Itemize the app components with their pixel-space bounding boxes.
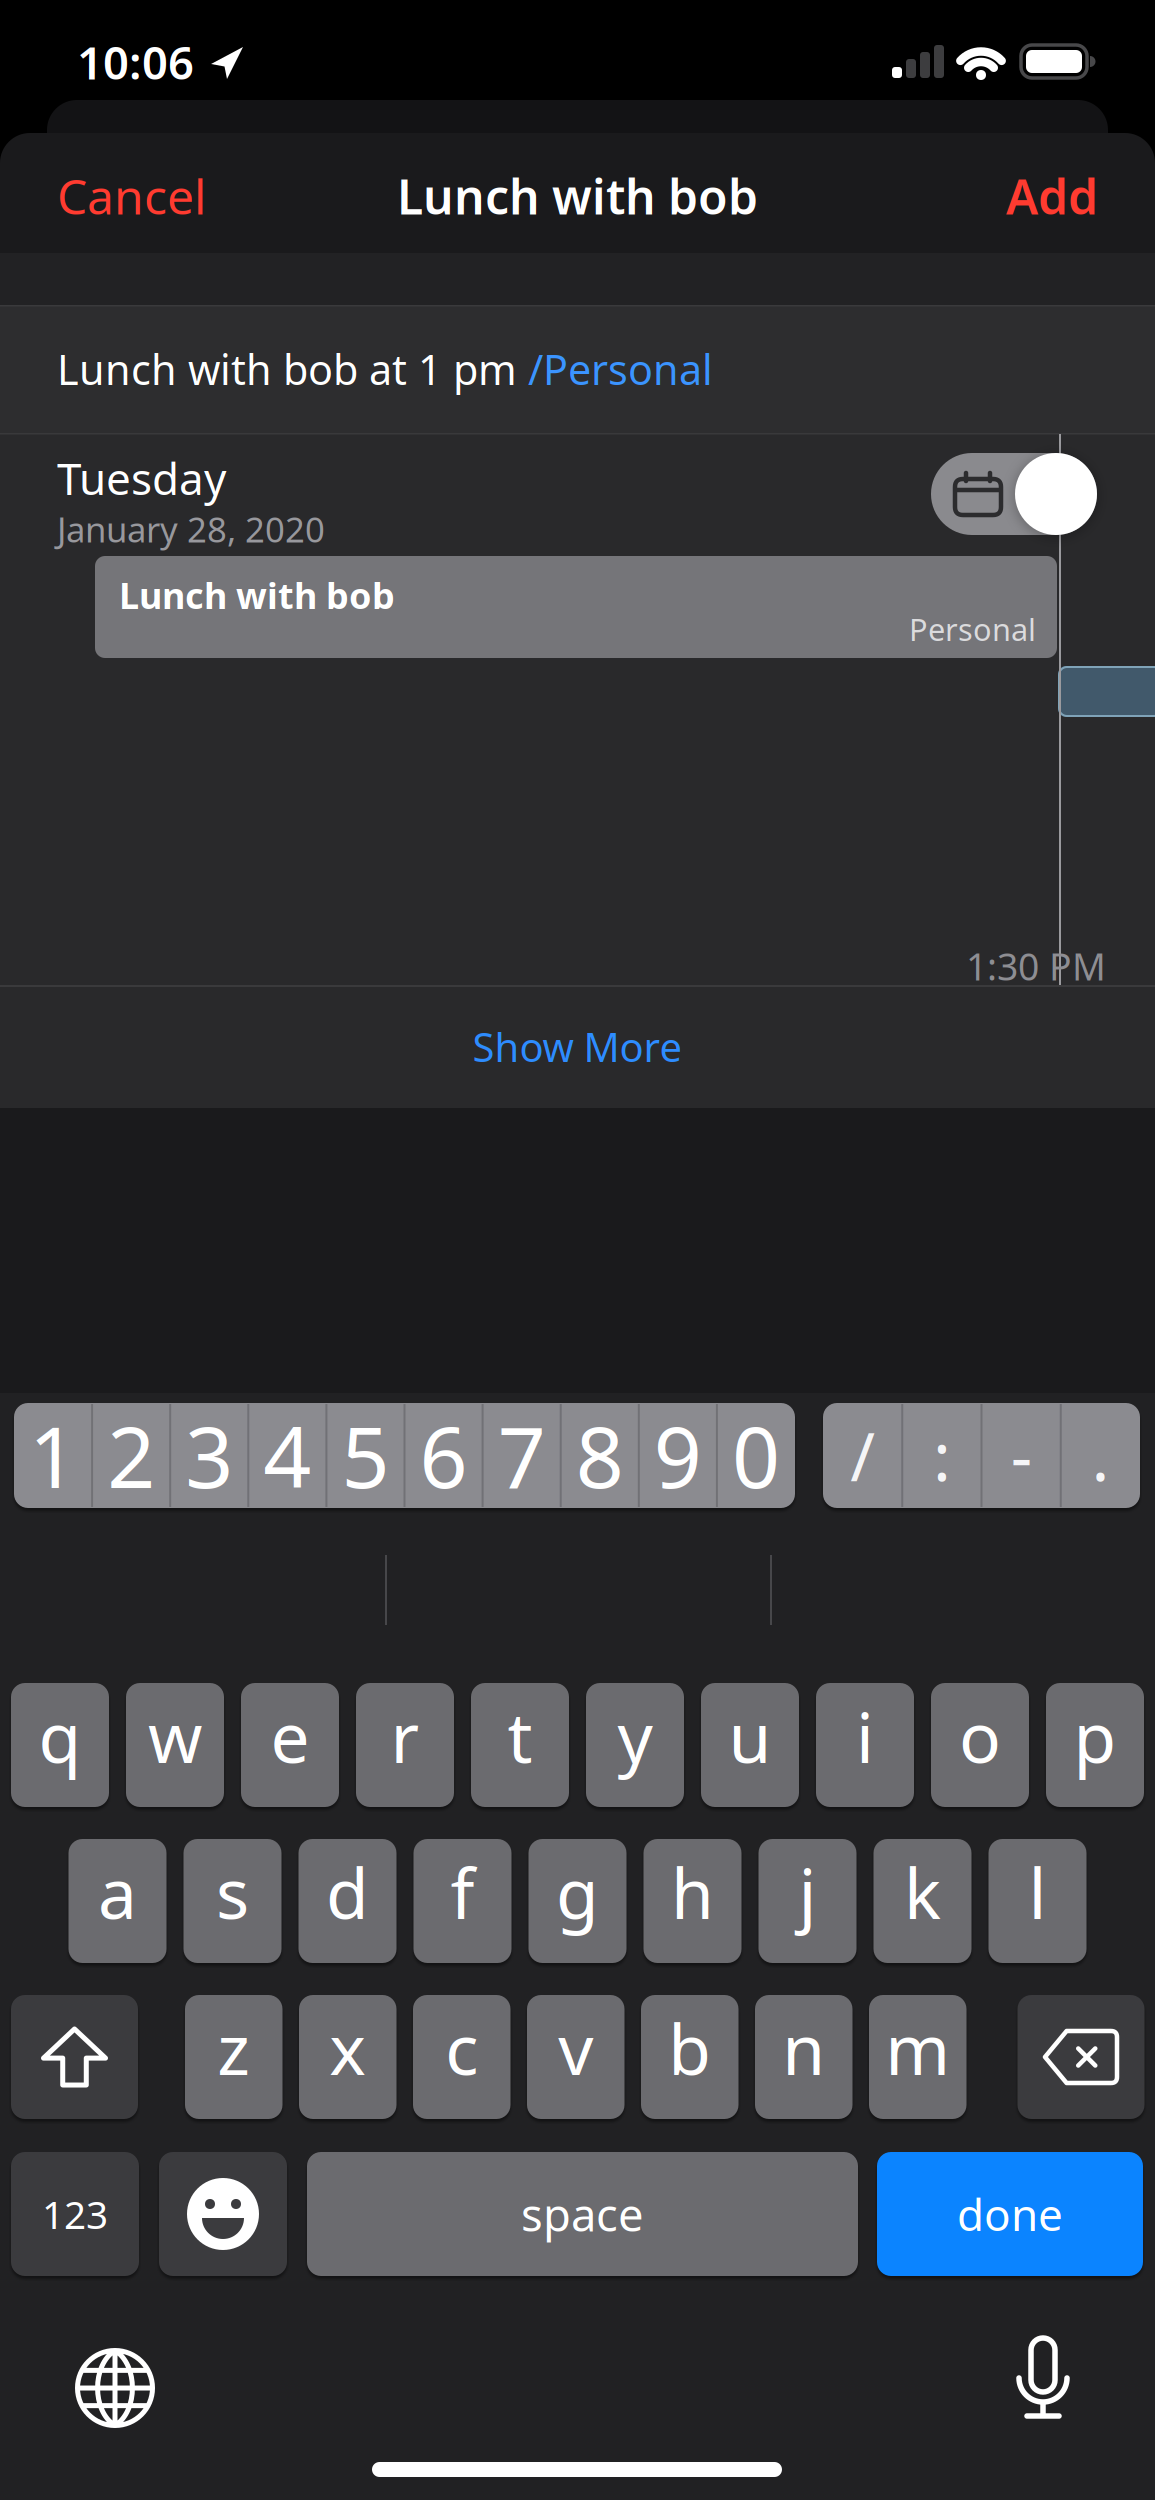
- button[interactable]: done: [877, 2152, 1143, 2276]
- button[interactable]: r: [356, 1683, 454, 1807]
- button[interactable]: l: [988, 1839, 1086, 1963]
- staticText: 6: [419, 1400, 467, 1511]
- button[interactable]: space: [307, 2152, 858, 2276]
- button[interactable]: c: [413, 1995, 510, 2119]
- staticText: January 28, 2020: [57, 506, 325, 552]
- staticText: d: [326, 1846, 369, 1938]
- staticText: m: [885, 2002, 950, 2094]
- button[interactable]: 2: [92, 1403, 170, 1508]
- staticText: a: [98, 1846, 137, 1938]
- button[interactable]: Next keyboard: [75, 2348, 155, 2428]
- staticText: z: [217, 2002, 250, 2094]
- button[interactable]: 1: [14, 1403, 92, 1508]
- staticText: .: [1091, 1411, 1109, 1500]
- staticText: h: [671, 1846, 714, 1938]
- button[interactable]: 6: [404, 1403, 482, 1508]
- button[interactable]: x: [299, 1995, 396, 2119]
- staticText: o: [959, 1690, 1001, 1782]
- button[interactable]: w: [126, 1683, 224, 1807]
- staticText: Lunch with bob at 1 pm: [57, 342, 528, 396]
- button[interactable]: Show More: [0, 985, 1155, 1108]
- button[interactable]: z: [185, 1995, 282, 2119]
- staticText: n: [782, 2002, 825, 2094]
- button[interactable]: p: [1046, 1683, 1144, 1807]
- button[interactable]: o: [931, 1683, 1029, 1807]
- button[interactable]: j: [758, 1839, 856, 1963]
- staticText: Cancel: [57, 164, 206, 228]
- staticText: p: [1073, 1690, 1116, 1782]
- staticText: 9: [654, 1400, 702, 1511]
- button[interactable]: 3: [170, 1403, 248, 1508]
- staticText: Lunch with bob: [397, 164, 758, 228]
- button[interactable]: -: [982, 1403, 1061, 1508]
- button[interactable]: 5: [326, 1403, 404, 1508]
- staticText: Show More: [472, 1020, 682, 1073]
- staticText: space: [521, 2184, 644, 2244]
- button[interactable]: d: [298, 1839, 396, 1963]
- button[interactable]: :: [902, 1403, 981, 1508]
- staticText: 10:06: [77, 32, 194, 92]
- button[interactable]: 123: [11, 2152, 139, 2276]
- staticText: 0: [732, 1400, 780, 1511]
- staticText: f: [450, 1846, 474, 1938]
- staticText: :: [933, 1411, 951, 1500]
- staticText: /Personal: [528, 342, 713, 396]
- staticText: 1: [29, 1400, 77, 1511]
- staticText: 7: [498, 1400, 546, 1511]
- button[interactable]: 0: [717, 1403, 795, 1508]
- button[interactable]: u: [701, 1683, 799, 1807]
- button[interactable]: Add: [0, 0, 1155, 2500]
- button[interactable]: t: [471, 1683, 569, 1807]
- staticText: Tuesday: [57, 449, 226, 507]
- button[interactable]: Shift: [11, 1995, 138, 2119]
- staticText: j: [798, 1846, 816, 1938]
- button[interactable]: Cancel: [0, 0, 1155, 2500]
- staticText: 1:30 PM: [966, 941, 1106, 991]
- button[interactable]: n: [755, 1995, 852, 2119]
- staticText: t: [507, 1690, 532, 1782]
- button[interactable]: g: [528, 1839, 626, 1963]
- staticText: s: [216, 1846, 249, 1938]
- staticText: 3: [185, 1400, 233, 1511]
- button[interactable]: Emoji: [159, 2152, 287, 2276]
- staticText: Add: [1006, 164, 1098, 228]
- button[interactable]: a: [68, 1839, 166, 1963]
- staticText: r: [390, 1690, 419, 1782]
- staticText: b: [668, 2002, 711, 2094]
- button[interactable]: v: [527, 1995, 624, 2119]
- staticText: x: [329, 2002, 366, 2094]
- button[interactable]: s: [183, 1839, 281, 1963]
- button[interactable]: Delete: [1017, 1995, 1144, 2119]
- staticText: g: [556, 1846, 599, 1938]
- button[interactable]: q: [11, 1683, 109, 1807]
- staticText: 8: [576, 1400, 624, 1511]
- staticText: done: [957, 2185, 1063, 2243]
- staticText: q: [38, 1690, 81, 1782]
- button[interactable]: 9: [639, 1403, 717, 1508]
- button[interactable]: /: [823, 1403, 902, 1508]
- button[interactable]: Show calendar preview: [931, 453, 1097, 535]
- button[interactable]: m: [869, 1995, 966, 2119]
- button[interactable]: 7: [483, 1403, 561, 1508]
- staticText: Lunch with bob: [119, 571, 395, 619]
- staticText: e: [270, 1690, 309, 1782]
- button[interactable]: k: [873, 1839, 971, 1963]
- button[interactable]: h: [643, 1839, 741, 1963]
- button[interactable]: 8: [561, 1403, 639, 1508]
- button[interactable]: 4: [248, 1403, 326, 1508]
- staticText: l: [1028, 1846, 1046, 1938]
- button[interactable]: i: [816, 1683, 914, 1807]
- button[interactable]: .: [1061, 1403, 1140, 1508]
- button[interactable]: Dictate: [1011, 2338, 1075, 2438]
- staticText: 4: [263, 1400, 311, 1511]
- staticText: w: [148, 1690, 202, 1782]
- button[interactable]: f: [413, 1839, 511, 1963]
- staticText: u: [728, 1690, 771, 1782]
- button[interactable]: b: [641, 1995, 738, 2119]
- button[interactable]: y: [586, 1683, 684, 1807]
- staticText: k: [904, 1846, 941, 1938]
- button[interactable]: Lunch with bob: [95, 556, 1057, 658]
- button[interactable]: e: [241, 1683, 339, 1807]
- staticText: /: [850, 1411, 875, 1500]
- staticText: c: [445, 2002, 478, 2094]
